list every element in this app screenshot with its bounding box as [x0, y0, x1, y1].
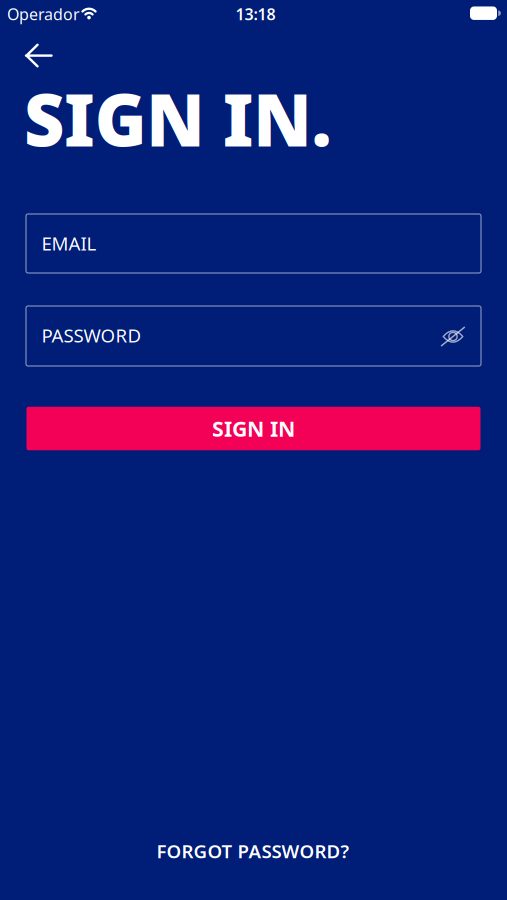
button[interactable]: Show password — [438, 324, 468, 349]
button[interactable]: Back — [12, 37, 66, 75]
staticText: 13:18 — [235, 3, 275, 25]
staticText: FORGOT PASSWORD? — [156, 839, 349, 863]
button[interactable]: FORGOT PASSWORD? — [146, 833, 359, 869]
staticText: PASSWORD — [41, 323, 141, 348]
staticText: SIGN IN — [212, 414, 295, 443]
staticText: EMAIL — [41, 231, 96, 256]
staticText: Operador — [7, 3, 80, 25]
staticText: SIGN IN. — [24, 69, 346, 167]
button[interactable]: SIGN IN — [26, 407, 480, 450]
